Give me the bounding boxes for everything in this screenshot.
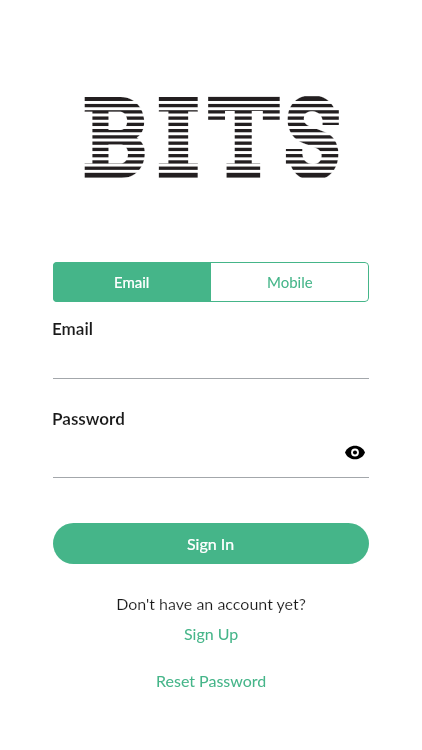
staticText: Password — [52, 408, 125, 428]
staticText: S — [284, 72, 341, 205]
staticText: Sign In — [187, 534, 235, 553]
button[interactable]: Reset Password — [144, 667, 279, 694]
staticText: Reset Password — [156, 671, 267, 690]
button[interactable]: Sign Up — [172, 620, 251, 647]
staticText: Email — [114, 273, 150, 291]
staticText: Mobile — [267, 273, 313, 291]
button[interactable]: Sign In — [53, 523, 369, 564]
staticText: T — [207, 72, 282, 205]
staticText: B — [79, 72, 148, 205]
staticText: Sign Up — [184, 624, 239, 643]
button[interactable]: Show password — [341, 439, 368, 466]
staticText: Email — [52, 318, 93, 338]
button[interactable]: Email — [53, 262, 211, 302]
button[interactable]: Mobile — [211, 262, 369, 302]
staticText: Don't have an account yet? — [0, 594, 422, 613]
staticText: I — [152, 72, 201, 205]
